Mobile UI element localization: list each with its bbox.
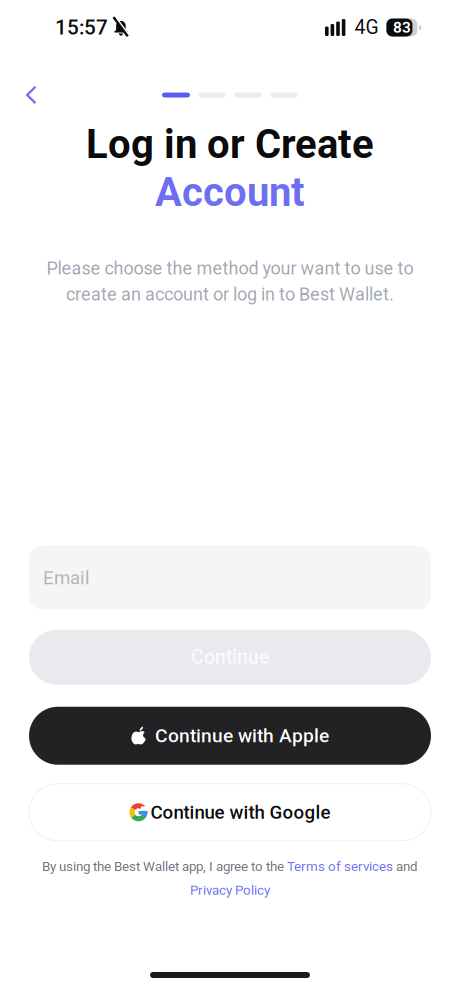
staticText: 4G [354, 16, 378, 39]
button[interactable]: Continue with Apple [29, 707, 431, 765]
staticText: 15:57 [55, 15, 108, 40]
staticText: 83 [393, 18, 411, 36]
button[interactable]: Terms of services [287, 859, 393, 874]
staticText: Continue with Apple [155, 724, 329, 747]
staticText: By using the Best Wallet app, I agree to… [42, 859, 287, 874]
button[interactable]: Continue [29, 630, 431, 685]
staticText: Email [43, 567, 90, 589]
button[interactable]: Continue with Google [29, 784, 431, 841]
staticText: Log in or Create [86, 121, 374, 168]
staticText: Continue with Google [150, 801, 330, 823]
staticText: Privacy Policy [190, 882, 270, 898]
staticText: Terms of services [287, 859, 393, 874]
staticText: create an account or log in to Best Wall… [66, 284, 394, 305]
staticText: Please choose the method your want to us… [46, 258, 413, 279]
staticText: Account [155, 169, 305, 216]
staticText: and [393, 859, 418, 874]
staticText: Continue [191, 646, 269, 669]
button[interactable]: Privacy Policy [190, 882, 270, 898]
button[interactable]: Back [9, 73, 53, 117]
